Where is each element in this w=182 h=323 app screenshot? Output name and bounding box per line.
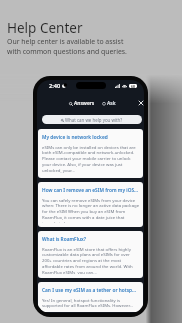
staticText: RoamFlux is an eSIM store that offers hi… <box>42 246 133 274</box>
staticText: Can I use my eSIM as a tether or hotspot… <box>42 287 139 294</box>
button[interactable]: My device is network locked <box>38 129 143 178</box>
button[interactable]: Can I use my eSIM as a tether or hotspot… <box>38 282 143 312</box>
staticText: 2:40 <box>49 82 61 90</box>
button[interactable]: Close <box>138 100 144 106</box>
staticText: eSIMs can only be installed on devices t… <box>42 144 136 174</box>
button[interactable]: Answers <box>68 99 96 108</box>
staticText: What is RoamFlux? <box>42 236 86 243</box>
staticText: 68 <box>131 84 135 88</box>
staticText: How can I remove an eSIM from my iOS de.… <box>42 187 139 194</box>
staticText: Ask <box>107 100 116 107</box>
button[interactable]: What can we help you with? <box>42 115 142 124</box>
button[interactable]: Ask <box>101 99 117 108</box>
button[interactable]: What is RoamFlux? <box>38 231 143 278</box>
staticText: Help Center <box>7 19 83 37</box>
staticText: What can we help you with? <box>65 117 123 123</box>
button[interactable]: How can I remove an eSIM from my iOS de.… <box>38 182 143 227</box>
staticText: My device is network locked <box>42 134 108 141</box>
staticText: You can safely remove eSIMs from your de… <box>42 197 139 223</box>
staticText: Answers <box>74 100 95 107</box>
staticText: Yes! In general, hotspot functionality i… <box>42 297 133 308</box>
staticText: Our help center is available to assist w… <box>7 37 127 56</box>
